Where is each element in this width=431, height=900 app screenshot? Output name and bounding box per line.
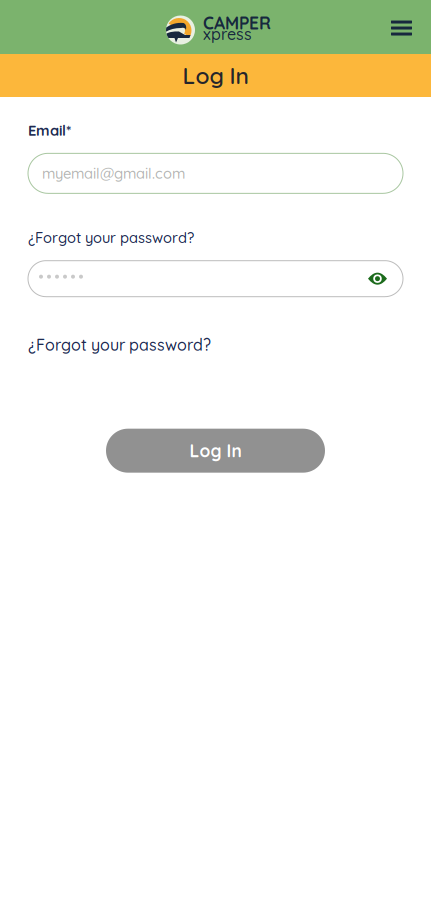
staticText: ¿Forgot your password?: [28, 335, 211, 355]
button[interactable]: Show password: [368, 271, 403, 286]
staticText: CAMPER: [203, 12, 271, 34]
staticText: xpress: [203, 24, 252, 44]
staticText: Log In: [189, 440, 241, 461]
staticText: ¿Forgot your password?: [28, 228, 194, 247]
button[interactable]: Log In: [106, 429, 325, 473]
staticText: Email*: [28, 121, 71, 139]
staticText: Log In: [182, 61, 248, 90]
button[interactable]: Menu: [381, 10, 422, 45]
staticText: myemail@gmail.com: [42, 164, 185, 182]
button[interactable]: ¿Forgot your password?: [28, 335, 211, 355]
